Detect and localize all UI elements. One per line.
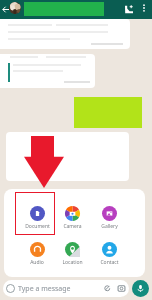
button[interactable]: Camera: [56, 206, 88, 230]
staticText: Document: [25, 223, 50, 230]
button[interactable]: Back: [0, 2, 10, 17]
button[interactable]: Gallery: [93, 206, 125, 230]
staticText: Type a message: [18, 284, 71, 294]
button[interactable]: Document: [21, 206, 53, 230]
staticText: Contact: [100, 259, 119, 266]
button[interactable]: Type a message: [3, 280, 129, 297]
button[interactable]: Contact: [93, 242, 125, 266]
button[interactable]: Audio: [21, 242, 53, 266]
button[interactable]: Voice message: [132, 280, 149, 297]
button[interactable]: Call: [121, 1, 137, 17]
button[interactable]: More options: [137, 1, 151, 15]
staticText: Location: [62, 259, 83, 266]
button[interactable]: Profile photo: [9, 2, 21, 14]
staticText: Audio: [30, 259, 44, 266]
button[interactable]: Location: [56, 242, 88, 266]
staticText: Gallery: [101, 223, 118, 230]
staticText: Camera: [63, 223, 82, 230]
